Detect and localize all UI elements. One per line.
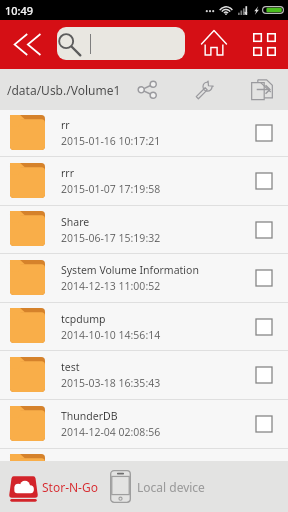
staticText: 10:49 [5, 3, 34, 18]
staticText: Share [61, 215, 90, 229]
staticText: /data/Usb./Volume1 [7, 82, 121, 98]
button[interactable]: Select [240, 254, 288, 302]
button[interactable]: Back [0, 20, 56, 69]
staticText: 2015-06-17 15:19:32 [61, 231, 161, 245]
staticText: 2015-01-07 17:19:58 [61, 182, 161, 196]
staticText: tcpdump [61, 312, 106, 326]
staticText: 2015-03-18 16:35:43 [61, 376, 161, 390]
staticText: System Volume Information [61, 263, 199, 277]
staticText: rrr [61, 166, 75, 180]
button[interactable]: Search [57, 27, 185, 60]
button[interactable]: Stor-N-Go [0, 461, 105, 512]
button[interactable]: Select [0, 449, 288, 496]
button[interactable]: Select [240, 157, 288, 205]
button[interactable]: Local device [105, 461, 288, 512]
staticText: Local device [137, 479, 205, 495]
staticText: test [61, 360, 80, 374]
button[interactable]: Select [240, 351, 288, 399]
staticText: 2015-01-16 10:17:21 [61, 134, 161, 148]
button[interactable]: rrr [0, 157, 288, 205]
button[interactable]: Select [240, 110, 288, 156]
staticText: 2014-12-04 02:08:56 [61, 425, 161, 439]
button[interactable]: tcpdump [0, 303, 288, 350]
button[interactable]: Home [190, 20, 238, 69]
button[interactable]: test [0, 351, 288, 399]
button[interactable]: Share [0, 206, 288, 253]
button[interactable]: Select [240, 206, 288, 253]
button[interactable]: Tools [182, 69, 227, 110]
button[interactable]: Select [240, 400, 288, 448]
staticText: 2014-12-13 11:00:52 [61, 279, 161, 293]
button[interactable]: Select [240, 303, 288, 350]
button[interactable]: ThunderDB [0, 400, 288, 448]
button[interactable]: Grid view [241, 20, 288, 69]
button[interactable]: Export [239, 69, 284, 110]
button[interactable]: rr [0, 110, 288, 156]
button[interactable]: System Volume Information [0, 254, 288, 302]
button[interactable]: Share [125, 69, 170, 110]
staticText: 2014-10-10 14:56:14 [61, 328, 161, 342]
staticText: Stor-N-Go [42, 479, 98, 495]
staticText: rr [61, 118, 70, 132]
staticText: ThunderDB [61, 409, 118, 423]
button[interactable]: Select [240, 449, 288, 496]
